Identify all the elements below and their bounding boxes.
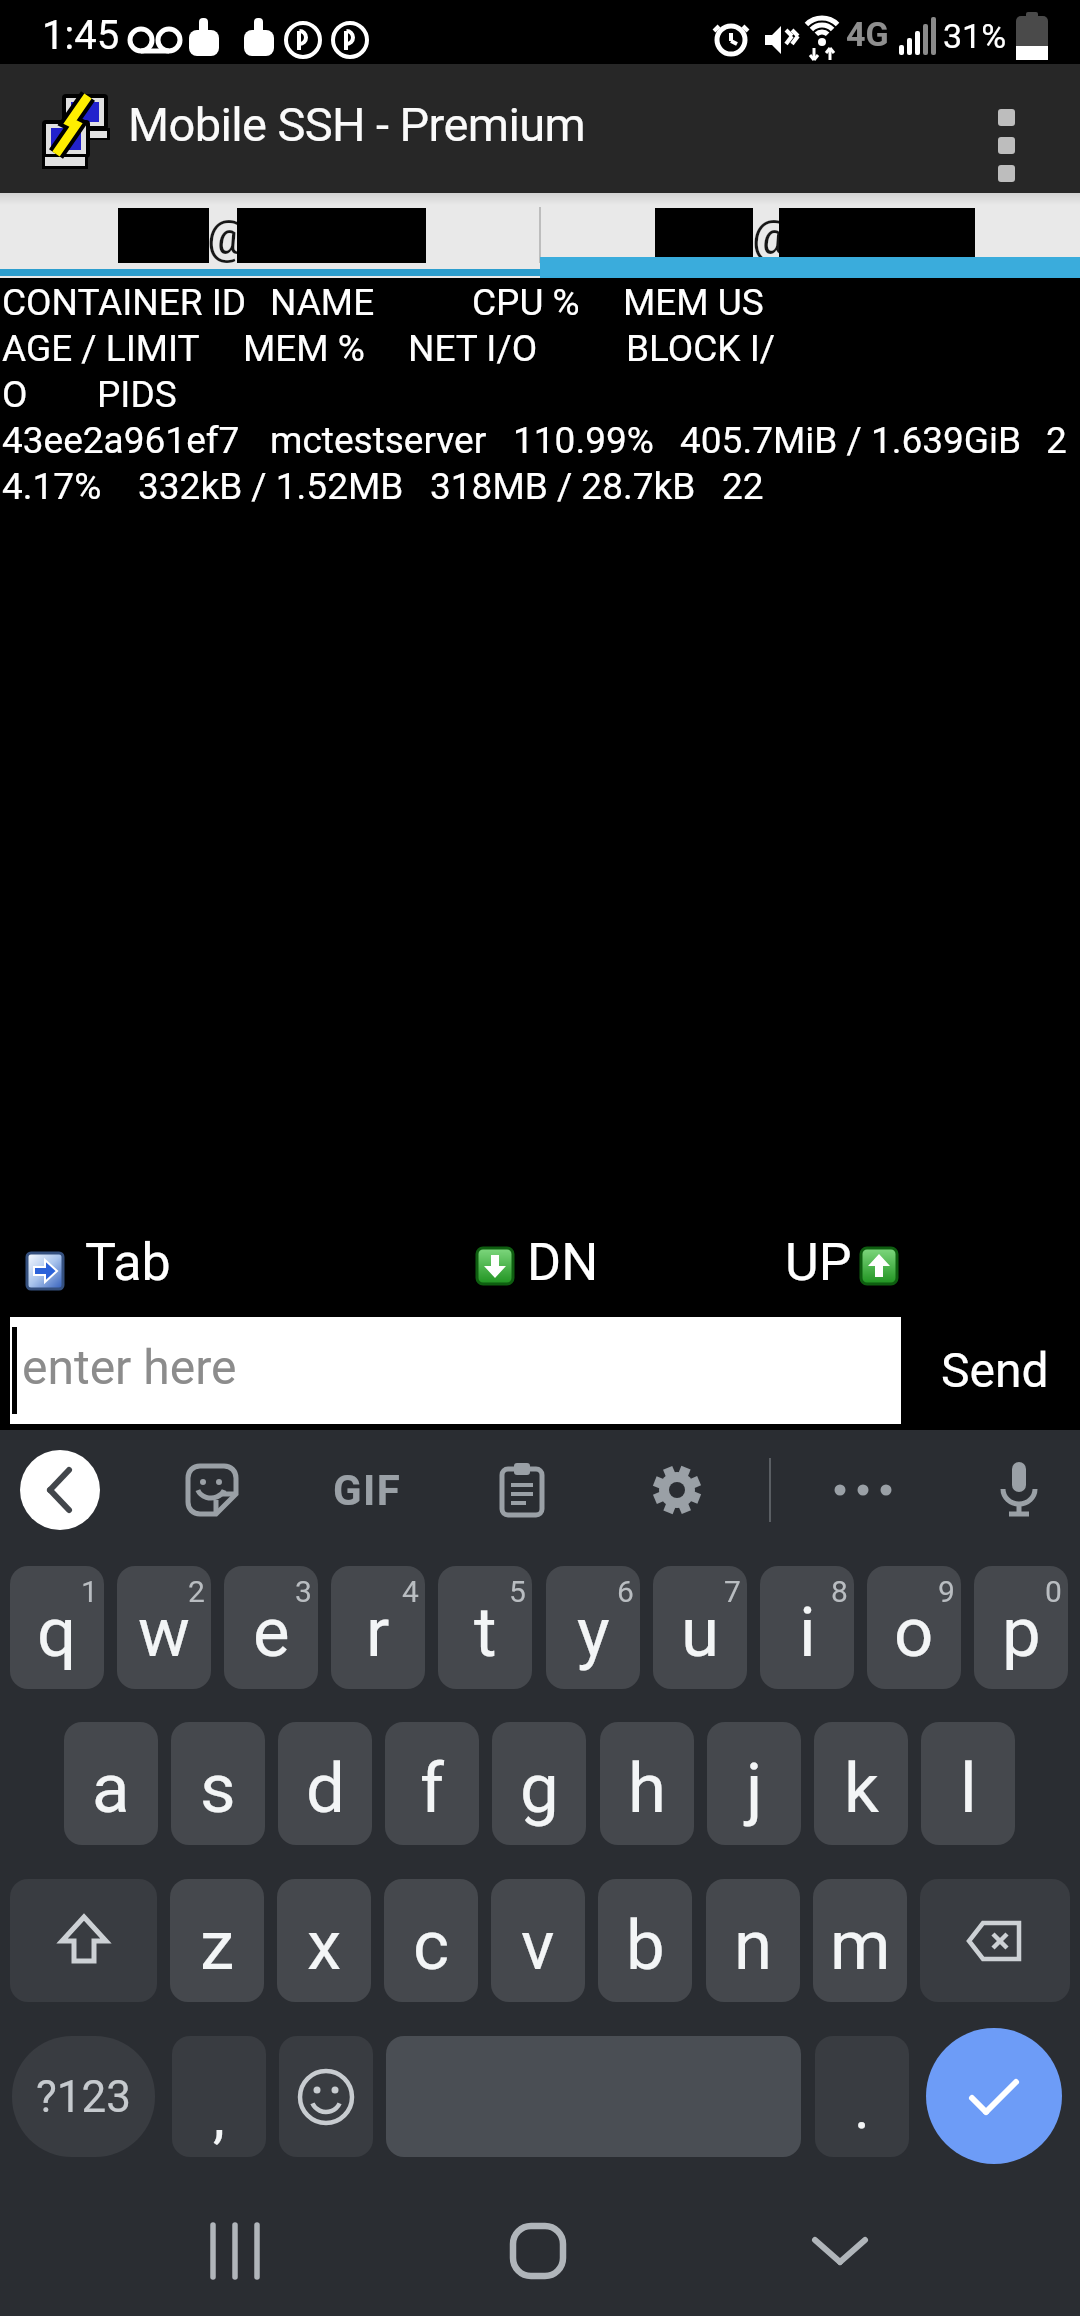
staticText: b	[626, 1905, 665, 1986]
staticText: a	[92, 1748, 130, 1829]
staticText: 22	[722, 465, 764, 508]
button[interactable]: w	[117, 1566, 211, 1689]
staticText: q	[37, 1592, 77, 1673]
button[interactable]: t	[438, 1566, 532, 1689]
staticText: e	[253, 1592, 290, 1673]
staticText: j	[746, 1748, 763, 1829]
staticText: t	[474, 1592, 497, 1673]
button[interactable]	[279, 2036, 373, 2157]
button[interactable]: r	[331, 1566, 425, 1689]
staticText: 4.17%	[2, 465, 102, 508]
button[interactable]: c	[384, 1879, 478, 2002]
button[interactable]	[785, 2211, 895, 2291]
staticText: Send	[941, 1342, 1049, 1398]
staticText: ,	[213, 2080, 225, 2150]
button[interactable]: Send	[920, 1330, 1070, 1410]
staticText: 43ee2a961ef7	[2, 419, 240, 462]
button[interactable]: q	[10, 1566, 104, 1689]
staticText: GIF	[333, 1466, 402, 1515]
staticText: 1	[81, 1574, 98, 1609]
button[interactable]: Tab	[15, 1232, 185, 1298]
staticText: g	[520, 1748, 559, 1829]
button[interactable]: ?123	[12, 2036, 155, 2157]
staticText: AGE / LIMIT	[2, 327, 200, 370]
button[interactable]: j	[707, 1722, 801, 1845]
staticText: d	[306, 1748, 345, 1829]
staticText: MEM %	[243, 327, 365, 370]
button[interactable]: s	[171, 1722, 265, 1845]
staticText: BLOCK I/	[626, 327, 776, 370]
staticText: DN	[527, 1232, 599, 1293]
button[interactable]: a	[64, 1722, 158, 1845]
staticText: CPU %	[472, 281, 580, 324]
button[interactable]	[975, 104, 1037, 193]
staticText: @	[752, 211, 794, 265]
staticText: r	[366, 1592, 390, 1673]
button[interactable]: l	[921, 1722, 1015, 1845]
button[interactable]: g	[492, 1722, 586, 1845]
button[interactable]: h	[600, 1722, 694, 1845]
button[interactable]: @	[540, 193, 1080, 278]
staticText: 31%	[943, 16, 1007, 56]
button[interactable]: v	[491, 1879, 585, 2002]
button[interactable]: UP	[770, 1232, 910, 1298]
staticText: s	[200, 1748, 236, 1829]
button[interactable]: ,	[172, 2036, 266, 2157]
staticText: Tab	[85, 1232, 171, 1293]
staticText: h	[628, 1748, 667, 1829]
button[interactable]: .	[815, 2036, 909, 2157]
staticText: 9	[938, 1574, 955, 1609]
staticText: 110.99%	[513, 419, 654, 462]
staticText: v	[521, 1905, 555, 1986]
staticText: 8	[831, 1574, 848, 1609]
button[interactable]: k	[814, 1722, 908, 1845]
button[interactable]: z	[170, 1879, 264, 2002]
button[interactable]: b	[598, 1879, 692, 2002]
button[interactable]	[920, 1879, 1070, 2002]
button[interactable]: f	[385, 1722, 479, 1845]
staticText: 3	[295, 1574, 312, 1609]
button[interactable]	[816, 1454, 910, 1526]
staticText: k	[844, 1748, 879, 1829]
button[interactable]	[926, 2028, 1062, 2164]
button[interactable]: DN	[465, 1232, 605, 1298]
staticText: i	[799, 1592, 816, 1673]
button[interactable]: u	[653, 1566, 747, 1689]
button[interactable]: enter here	[10, 1317, 901, 1424]
button[interactable]: m	[813, 1879, 907, 2002]
button[interactable]	[641, 1454, 713, 1526]
button[interactable]	[176, 1454, 248, 1526]
staticText: 7	[724, 1574, 741, 1609]
staticText: f	[420, 1748, 444, 1829]
staticText: x	[307, 1905, 342, 1986]
button[interactable]: y	[546, 1566, 640, 1689]
button[interactable]: i	[760, 1566, 854, 1689]
staticText: 332kB / 1.52MB	[138, 465, 404, 508]
staticText: .	[854, 2072, 870, 2142]
button[interactable]: e	[224, 1566, 318, 1689]
button[interactable]	[180, 2211, 290, 2291]
staticText: 318MB / 28.7kB	[430, 465, 696, 508]
staticText: z	[200, 1905, 235, 1986]
button[interactable]: o	[867, 1566, 961, 1689]
button[interactable]: p	[974, 1566, 1068, 1689]
staticText: p	[1002, 1592, 1041, 1673]
button[interactable]	[10, 1879, 157, 2002]
button[interactable]	[486, 1454, 558, 1526]
button[interactable]: x	[277, 1879, 371, 2002]
button[interactable]: @	[0, 193, 540, 278]
staticText: 405.7MiB / 1.639GiB	[680, 419, 1022, 462]
button[interactable]	[983, 1454, 1055, 1526]
button[interactable]: n	[706, 1879, 800, 2002]
button[interactable]: d	[278, 1722, 372, 1845]
button[interactable]	[20, 1450, 100, 1530]
staticText: MEM US	[623, 281, 764, 324]
staticText: 1:45	[42, 12, 120, 59]
button[interactable]	[483, 2211, 593, 2291]
button[interactable]: GIF	[322, 1454, 412, 1526]
staticText: 2	[188, 1574, 205, 1609]
staticText: ?123	[36, 2071, 131, 2123]
staticText: 4	[402, 1574, 419, 1609]
staticText: CONTAINER ID	[2, 281, 247, 324]
